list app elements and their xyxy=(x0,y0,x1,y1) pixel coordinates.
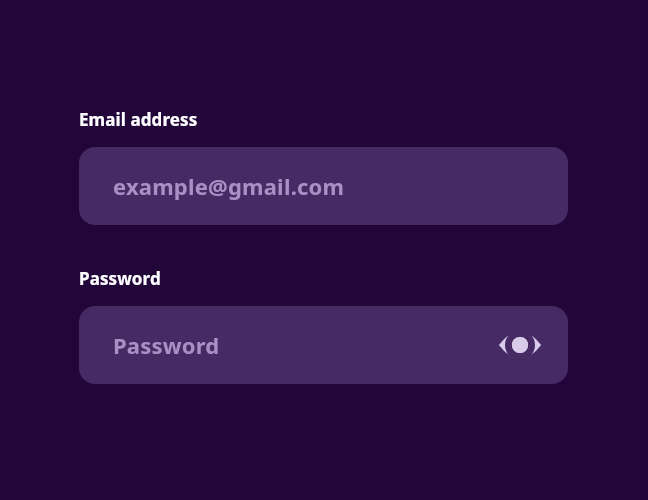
button[interactable]: Show password xyxy=(494,326,546,364)
staticText: Password xyxy=(79,267,161,290)
button[interactable]: Password xyxy=(79,306,568,384)
button[interactable]: example@gmail.com xyxy=(79,147,568,225)
staticText: Email address xyxy=(79,108,198,131)
staticText: example@gmail.com xyxy=(113,171,345,201)
staticText: Password xyxy=(113,330,220,360)
